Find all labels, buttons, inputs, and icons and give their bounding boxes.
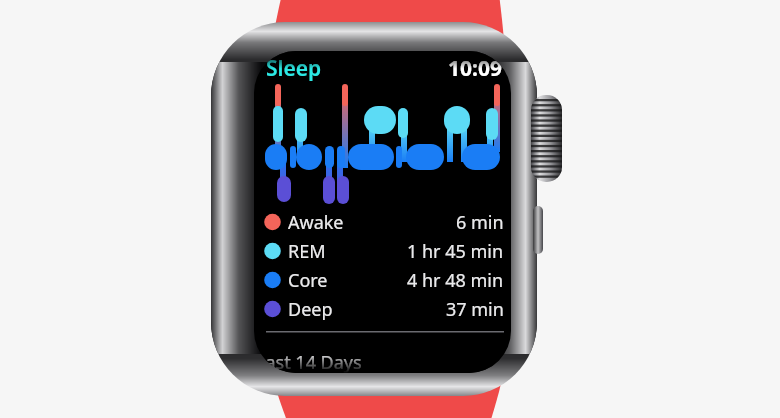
button[interactable]: Apple Watch Sleep summary screen [0, 0, 780, 418]
